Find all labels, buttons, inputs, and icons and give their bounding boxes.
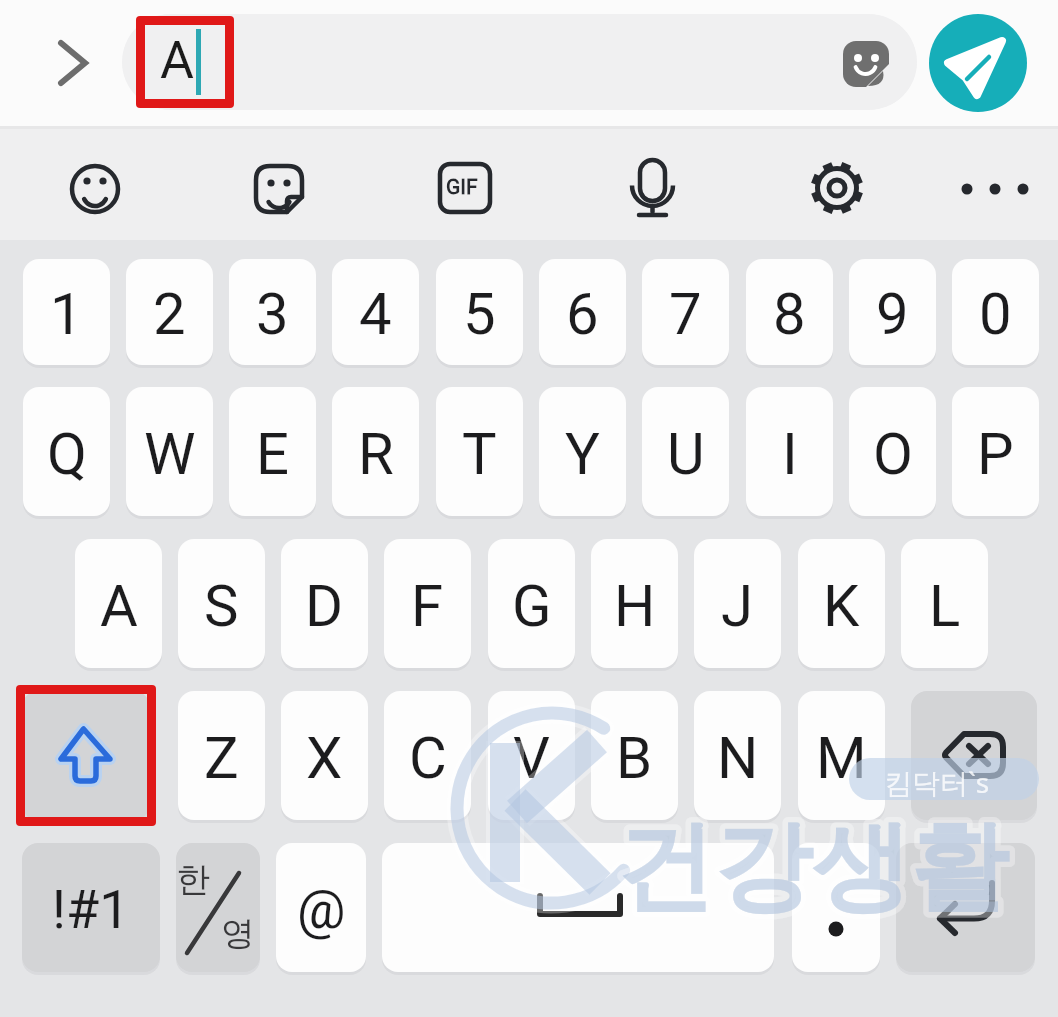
button[interactable]: 9 <box>849 259 936 365</box>
button[interactable]: F <box>384 539 471 668</box>
button[interactable] <box>896 843 1035 972</box>
button[interactable]: 3 <box>229 259 316 365</box>
staticText: K <box>823 572 860 640</box>
staticText: U <box>667 420 705 488</box>
button[interactable]: 2 <box>126 259 213 365</box>
button[interactable] <box>60 154 130 224</box>
staticText: !#1 <box>52 878 130 941</box>
staticText: I <box>782 420 798 488</box>
button[interactable]: 4 <box>332 259 419 365</box>
staticText: 5 <box>463 280 496 348</box>
button[interactable]: @ <box>276 843 366 972</box>
button[interactable] <box>244 154 314 224</box>
button[interactable]: 1 <box>23 259 110 365</box>
staticText: 한 <box>176 858 210 901</box>
staticText: L <box>929 572 961 640</box>
button[interactable]: I <box>746 387 833 516</box>
staticText: D <box>305 572 344 640</box>
staticText: P <box>977 420 1014 488</box>
staticText: T <box>462 420 497 488</box>
button[interactable]: P <box>952 387 1039 516</box>
staticText: 건강생활 <box>616 806 1008 929</box>
button[interactable]: H <box>591 539 678 668</box>
button[interactable]: G <box>488 539 575 668</box>
staticText: J <box>721 572 754 640</box>
staticText: R <box>358 420 394 488</box>
button[interactable]: S <box>178 539 265 668</box>
staticText: C <box>409 724 447 792</box>
button[interactable] <box>802 154 872 224</box>
button[interactable]: R <box>332 387 419 516</box>
staticText: E <box>256 420 289 488</box>
staticText: 7 <box>669 280 702 348</box>
staticText: A <box>100 572 138 640</box>
button[interactable]: 0 <box>952 259 1039 365</box>
button[interactable]: A <box>75 539 162 668</box>
staticText: F <box>411 572 444 640</box>
button[interactable] <box>960 154 1030 224</box>
staticText: V <box>513 724 550 792</box>
staticText: 건강생활 <box>616 806 1008 929</box>
button[interactable]: U <box>642 387 729 516</box>
button[interactable]: A <box>122 14 917 110</box>
staticText: G <box>512 572 552 640</box>
staticText: Y <box>565 420 600 488</box>
staticText: O <box>873 420 913 488</box>
button[interactable] <box>911 691 1037 820</box>
staticText: W <box>144 420 196 488</box>
button[interactable] <box>22 691 150 820</box>
staticText: 8 <box>773 280 806 348</box>
button[interactable]: W <box>126 387 213 516</box>
staticText: S <box>204 572 239 640</box>
button[interactable]: Y <box>539 387 626 516</box>
button[interactable] <box>792 843 880 972</box>
staticText: 6 <box>566 280 599 348</box>
button[interactable]: 7 <box>642 259 729 365</box>
button[interactable] <box>617 154 687 224</box>
button[interactable]: J <box>694 539 781 668</box>
button[interactable] <box>429 154 499 224</box>
staticText: B <box>616 724 653 792</box>
staticText: 1 <box>50 280 83 348</box>
button[interactable]: N <box>694 691 781 820</box>
staticText: Q <box>47 420 87 488</box>
staticText: @ <box>297 878 346 941</box>
staticText: 2 <box>153 280 186 348</box>
button[interactable]: O <box>849 387 936 516</box>
staticText: GIF <box>446 175 478 200</box>
button[interactable]: M <box>798 691 885 820</box>
button[interactable]: X <box>281 691 368 820</box>
staticText: 0 <box>979 280 1012 348</box>
button[interactable] <box>44 30 104 96</box>
button[interactable]: E <box>229 387 316 516</box>
staticText: 3 <box>256 280 289 348</box>
button[interactable]: 6 <box>539 259 626 365</box>
staticText: A <box>160 30 194 91</box>
button[interactable]: C <box>384 691 471 820</box>
staticText: M <box>816 724 867 792</box>
staticText: 영 <box>221 912 255 955</box>
button[interactable]: Q <box>23 387 110 516</box>
button[interactable] <box>382 843 774 972</box>
staticText: Z <box>204 724 239 792</box>
button[interactable]: V <box>488 691 575 820</box>
staticText: 4 <box>359 280 392 348</box>
button[interactable]: !#1 <box>22 843 160 972</box>
staticText: N <box>717 724 759 792</box>
button[interactable]: T <box>436 387 523 516</box>
staticText: 9 <box>876 280 909 348</box>
button[interactable]: B <box>591 691 678 820</box>
button[interactable] <box>929 14 1027 112</box>
button[interactable] <box>176 843 260 972</box>
button[interactable]: K <box>798 539 885 668</box>
staticText: X <box>306 724 343 792</box>
button[interactable]: 5 <box>436 259 523 365</box>
staticText: 킴닥터`s <box>884 763 990 801</box>
button[interactable]: Z <box>178 691 265 820</box>
button[interactable]: L <box>901 539 988 668</box>
button[interactable]: 8 <box>746 259 833 365</box>
button[interactable]: D <box>281 539 368 668</box>
staticText: H <box>614 572 656 640</box>
